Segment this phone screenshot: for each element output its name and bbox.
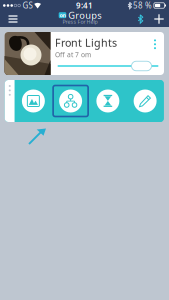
staticText: Off at 7 om	[55, 50, 91, 59]
staticText: Groups	[68, 9, 101, 21]
button[interactable]: Bluetooth	[136, 13, 145, 25]
staticText: Press For Help	[62, 18, 97, 25]
staticText: on	[59, 12, 65, 19]
staticText: 9:41	[76, 0, 93, 11]
button[interactable]: Add	[153, 13, 165, 25]
button[interactable]: Edit	[126, 80, 164, 122]
button[interactable]: Timers	[89, 80, 126, 122]
button[interactable]: Front Lights	[4, 32, 164, 75]
button[interactable]: Groups	[52, 80, 89, 122]
staticText: GS	[23, 0, 33, 11]
staticText: Front Lights	[55, 35, 117, 50]
button[interactable]: Scenes	[15, 80, 52, 122]
button[interactable]: Menu	[2, 11, 24, 27]
staticText: 58 %	[133, 0, 152, 11]
